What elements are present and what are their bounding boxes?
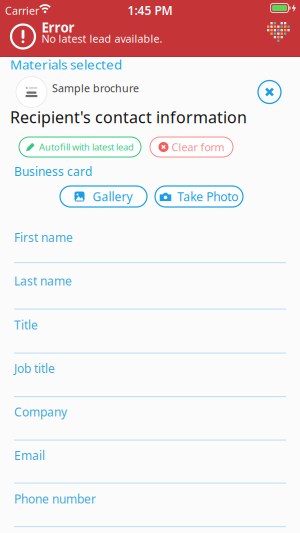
button[interactable]: Sample brochure [16, 76, 139, 107]
staticText: Take Photo [177, 188, 238, 204]
button[interactable]: Clear form [150, 137, 233, 157]
button[interactable]: Remove material [257, 80, 281, 104]
button[interactable]: Title [14, 317, 286, 354]
staticText: Recipient's contact information [10, 106, 247, 128]
staticText: 1:45 PM [127, 2, 172, 18]
staticText: Error [41, 18, 74, 36]
button[interactable]: Email [14, 447, 286, 484]
staticText: Gallery [92, 188, 132, 204]
button[interactable]: Take Photo [155, 186, 243, 207]
staticText: Autofill with latest lead [39, 141, 134, 153]
staticText: Job title [14, 360, 55, 376]
staticText: Phone number [14, 491, 96, 507]
staticText: Business card [14, 163, 92, 179]
staticText: First name [14, 229, 73, 245]
staticText: No latest lead available. [41, 31, 162, 46]
staticText: Title [14, 317, 38, 333]
staticText: Company [14, 404, 67, 420]
staticText: Materials selected [10, 55, 122, 73]
staticText: Clear form [171, 140, 224, 154]
staticText: Email [14, 447, 45, 463]
button[interactable]: Autofill with latest lead [19, 137, 141, 157]
button[interactable]: Gallery [60, 186, 147, 207]
staticText: Carrier [5, 3, 39, 18]
button[interactable]: Job title [14, 360, 286, 397]
button[interactable]: Company [14, 404, 286, 441]
staticText: Last name [14, 273, 72, 289]
button[interactable]: Phone number [14, 491, 286, 527]
staticText: Sample brochure [52, 81, 139, 95]
button[interactable]: First name [14, 229, 286, 263]
button[interactable]: Last name [14, 273, 286, 310]
